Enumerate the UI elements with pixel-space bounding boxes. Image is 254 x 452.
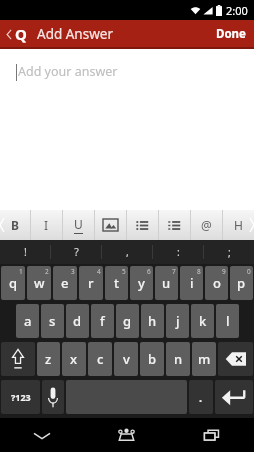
button[interactable]: h bbox=[141, 304, 164, 338]
button[interactable]: e bbox=[53, 266, 77, 300]
button[interactable]: u bbox=[155, 266, 178, 300]
button[interactable]: ? bbox=[51, 240, 101, 264]
staticText: r bbox=[88, 274, 94, 292]
button[interactable]: z bbox=[37, 342, 60, 376]
staticText: H bbox=[234, 217, 243, 233]
staticText: Add your answer bbox=[18, 63, 118, 80]
button[interactable]: UL bbox=[127, 210, 158, 240]
button[interactable]: . bbox=[189, 380, 213, 414]
button[interactable]: Hide keyboard bbox=[0, 418, 84, 452]
staticText: 3 bbox=[71, 267, 75, 276]
staticText: 9 bbox=[222, 267, 226, 276]
staticText: , bbox=[126, 245, 129, 259]
button[interactable]: d bbox=[66, 304, 89, 338]
button[interactable]: Done bbox=[208, 22, 254, 46]
staticText: f bbox=[100, 312, 105, 330]
staticText: m bbox=[198, 350, 211, 368]
staticText: o bbox=[213, 274, 221, 292]
button[interactable]: IMG bbox=[95, 210, 126, 240]
staticText: h bbox=[148, 312, 157, 330]
button[interactable]: t bbox=[105, 266, 128, 300]
button[interactable]: , bbox=[102, 240, 152, 264]
button[interactable]: j bbox=[166, 304, 189, 338]
staticText: p bbox=[237, 274, 246, 292]
button[interactable]: Recent apps bbox=[169, 418, 254, 452]
staticText: z bbox=[45, 350, 52, 368]
staticText: 2:00 bbox=[226, 3, 248, 18]
staticText: Add Answer bbox=[37, 25, 113, 43]
staticText: l bbox=[226, 312, 230, 330]
staticText: ! bbox=[24, 245, 27, 259]
button[interactable]: o bbox=[205, 266, 228, 300]
staticText: Q bbox=[15, 24, 27, 44]
button[interactable]: i bbox=[180, 266, 203, 300]
button[interactable]: p bbox=[230, 266, 253, 300]
button[interactable]: Home bbox=[84, 418, 169, 452]
staticText: ?123 bbox=[11, 391, 31, 403]
button[interactable]: Shift bbox=[1, 342, 35, 376]
button[interactable]: U bbox=[63, 210, 94, 240]
button[interactable]: Backspace bbox=[218, 342, 253, 376]
button[interactable]: Back bbox=[3, 22, 30, 46]
staticText: 0 bbox=[247, 267, 251, 276]
button[interactable]: c bbox=[88, 342, 112, 376]
button[interactable]: s bbox=[41, 304, 64, 338]
button[interactable]: : bbox=[153, 240, 203, 264]
staticText: 8 bbox=[197, 267, 201, 276]
staticText: 4 bbox=[97, 267, 101, 276]
staticText: t bbox=[114, 274, 119, 292]
button[interactable]: q bbox=[1, 266, 25, 300]
staticText: ; bbox=[228, 245, 231, 259]
staticText: y bbox=[138, 274, 145, 292]
staticText: 5 bbox=[122, 267, 126, 276]
button[interactable]: I bbox=[31, 210, 62, 240]
button[interactable]: f bbox=[91, 304, 114, 338]
staticText: a bbox=[24, 312, 32, 330]
staticText: @ bbox=[201, 217, 212, 233]
button[interactable]: y bbox=[130, 266, 153, 300]
staticText: Done bbox=[216, 26, 246, 42]
staticText: b bbox=[148, 350, 157, 368]
staticText: w bbox=[34, 274, 45, 292]
staticText: s bbox=[49, 312, 56, 330]
staticText: e bbox=[61, 274, 69, 292]
button[interactable]: ; bbox=[204, 240, 254, 264]
button[interactable]: l bbox=[216, 304, 239, 338]
staticText: j bbox=[176, 312, 180, 330]
staticText: n bbox=[174, 350, 183, 368]
button[interactable]: a bbox=[16, 304, 39, 338]
staticText: 2 bbox=[45, 267, 49, 276]
staticText: I bbox=[44, 217, 49, 233]
button[interactable]: b bbox=[140, 342, 164, 376]
staticText: d bbox=[73, 312, 82, 330]
staticText: v bbox=[123, 350, 130, 368]
button[interactable]: k bbox=[191, 304, 214, 338]
staticText: 1 bbox=[19, 267, 23, 276]
staticText: g bbox=[123, 312, 132, 330]
staticText: 7 bbox=[172, 267, 176, 276]
button[interactable]: B bbox=[0, 210, 30, 240]
button[interactable]: r bbox=[79, 266, 103, 300]
button[interactable]: g bbox=[116, 304, 139, 338]
button[interactable]: @ bbox=[191, 210, 222, 240]
staticText: c bbox=[97, 350, 104, 368]
button[interactable]: m bbox=[192, 342, 216, 376]
staticText: . bbox=[199, 390, 203, 405]
staticText: q bbox=[9, 274, 18, 292]
button[interactable]: v bbox=[114, 342, 138, 376]
button[interactable]: Enter bbox=[215, 380, 253, 414]
button[interactable]: n bbox=[166, 342, 190, 376]
button[interactable]: x bbox=[62, 342, 86, 376]
staticText: k bbox=[199, 312, 207, 330]
button[interactable]: ! bbox=[0, 240, 50, 264]
button[interactable]: w bbox=[27, 266, 51, 300]
staticText: i bbox=[190, 274, 194, 292]
button[interactable]: H bbox=[223, 210, 254, 240]
staticText: ? bbox=[74, 245, 79, 259]
button[interactable]: Voice input bbox=[42, 380, 64, 414]
button[interactable]: OL bbox=[159, 210, 190, 240]
button[interactable]: ?123 bbox=[1, 380, 40, 414]
staticText: B bbox=[11, 217, 19, 233]
staticText: : bbox=[177, 245, 180, 259]
